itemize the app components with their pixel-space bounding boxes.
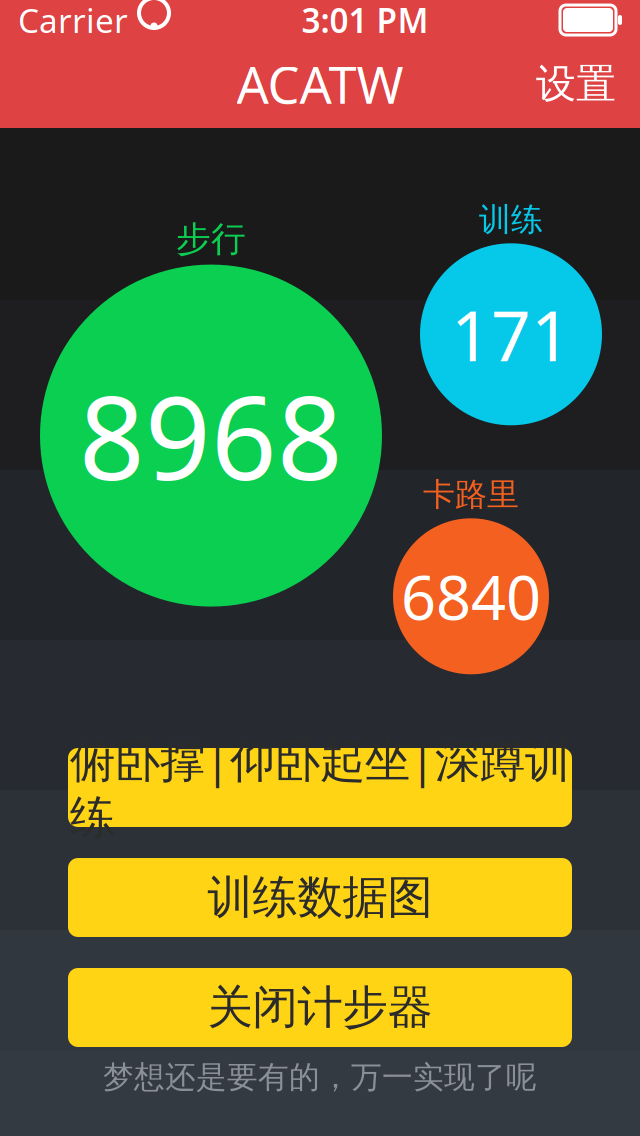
button[interactable]: 训练数据图: [68, 858, 572, 937]
staticText: 俯卧撑|仰卧起坐|深蹲训练: [70, 730, 570, 845]
staticText: 6840: [401, 556, 541, 637]
staticText: 关闭计步器: [207, 980, 432, 1035]
staticText: 步行: [176, 218, 246, 261]
staticText: ACATW: [236, 50, 403, 118]
staticText: 171: [451, 288, 571, 380]
staticText: 设置: [536, 59, 616, 108]
staticText: Carrier: [18, 0, 128, 42]
button[interactable]: 关闭计步器: [68, 968, 572, 1047]
staticText: 梦想还是要有的，万一实现了呢: [103, 1058, 537, 1096]
staticText: 训练数据图: [207, 870, 432, 925]
staticText: 训练: [479, 200, 543, 239]
staticText: 8968: [79, 359, 343, 512]
button[interactable]: 俯卧撑|仰卧起坐|深蹲训练: [68, 748, 572, 827]
button[interactable]: 设置: [520, 47, 632, 120]
staticText: 卡路里: [423, 475, 519, 514]
staticText: 3:01 PM: [301, 0, 428, 42]
